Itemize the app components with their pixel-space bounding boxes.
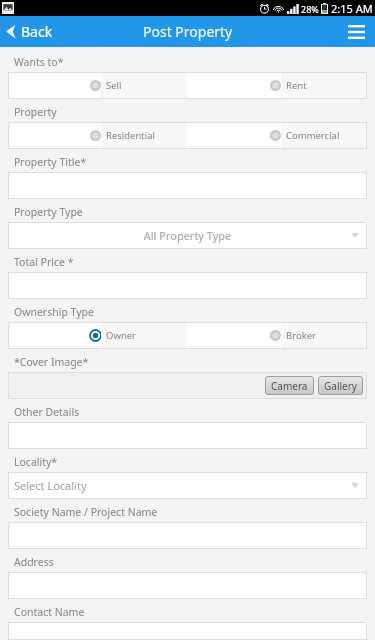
staticText: Locality*	[14, 455, 58, 469]
button[interactable]: Camera	[265, 376, 314, 395]
staticText: Post Property	[143, 22, 233, 41]
staticText: Select Locality	[14, 478, 87, 493]
staticText: Commercial	[286, 129, 340, 142]
button[interactable]: Owner	[8, 322, 187, 349]
button[interactable]	[8, 172, 367, 199]
staticText: Ownership Type	[14, 305, 94, 319]
staticText: Broker	[286, 329, 317, 342]
staticText: *Cover Image*	[14, 355, 89, 369]
staticText: Sell	[106, 79, 122, 92]
button[interactable]: Sell	[8, 72, 187, 99]
button[interactable]: Menu	[338, 16, 375, 47]
staticText: Property Title*	[14, 155, 87, 169]
button[interactable]: Select Locality	[8, 472, 367, 499]
staticText: 28%	[301, 3, 319, 15]
staticText: All Property Type	[8, 228, 367, 243]
button[interactable]	[8, 272, 367, 299]
staticText: Owner	[106, 329, 137, 342]
staticText: Back	[21, 22, 53, 41]
staticText: Contact Name	[14, 605, 85, 619]
staticText: Wants to*	[14, 55, 64, 69]
button[interactable]	[8, 622, 367, 640]
button[interactable]: Rent	[187, 72, 367, 99]
staticText: Other Details	[14, 405, 80, 419]
staticText: Property Type	[14, 205, 83, 219]
button[interactable]: Commercial	[187, 122, 367, 149]
staticText: Society Name / Project Name	[14, 505, 158, 519]
button[interactable]: Broker	[187, 322, 367, 349]
button[interactable]	[8, 422, 367, 449]
staticText: Residential	[106, 129, 156, 142]
button[interactable]	[8, 572, 367, 599]
button[interactable]: Back	[0, 16, 61, 47]
button[interactable]: Gallery	[318, 376, 363, 395]
staticText: Rent	[286, 79, 307, 92]
staticText: Camera	[271, 379, 308, 393]
staticText: Property	[14, 105, 57, 119]
button[interactable]: All Property Type	[8, 222, 367, 249]
staticText: Address	[14, 555, 54, 569]
staticText: Gallery	[324, 379, 357, 393]
button[interactable]: Residential	[8, 122, 187, 149]
button[interactable]	[8, 522, 367, 549]
staticText: 2:15 AM	[331, 1, 373, 16]
staticText: Total Price *	[14, 255, 74, 269]
